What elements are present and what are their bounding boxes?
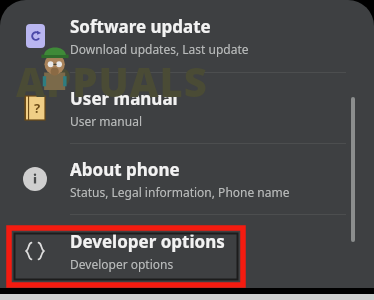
staticText: Software update <box>70 15 211 38</box>
staticText: About phone <box>70 158 180 181</box>
button[interactable]: Developer options <box>0 215 374 287</box>
staticText: APPUALS <box>16 54 208 108</box>
button[interactable]: Software update <box>0 0 374 72</box>
button[interactable]: ? <box>0 73 374 143</box>
staticText: Developer options <box>70 256 174 272</box>
staticText: User manual <box>70 113 142 129</box>
button[interactable]: About phone <box>0 144 374 214</box>
staticText: Download updates, Last update <box>70 41 249 57</box>
staticText: Developer options <box>70 230 225 253</box>
staticText: Status, Legal information, Phone name <box>70 184 290 200</box>
staticText: User manual <box>70 87 178 110</box>
staticText: ? <box>34 99 41 117</box>
